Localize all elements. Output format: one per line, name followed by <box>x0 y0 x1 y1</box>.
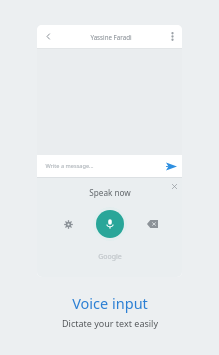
button[interactable]: Write a message... <box>37 155 182 177</box>
staticText: Yassine Faradi <box>90 33 132 41</box>
staticText: Voice input <box>72 293 148 313</box>
staticText: Write a message... <box>45 162 94 170</box>
button[interactable]: Backspace <box>141 213 163 235</box>
button[interactable]: Settings <box>57 213 79 235</box>
staticText: Speak now <box>89 187 131 198</box>
button[interactable]: Send <box>160 155 182 177</box>
button[interactable]: More options <box>162 25 182 48</box>
button[interactable]: Back <box>37 25 59 48</box>
staticText: Google <box>98 252 122 262</box>
button[interactable]: Close <box>166 178 182 194</box>
button[interactable]: Microphone <box>93 207 127 241</box>
staticText: Dictate your text easily <box>62 317 158 329</box>
